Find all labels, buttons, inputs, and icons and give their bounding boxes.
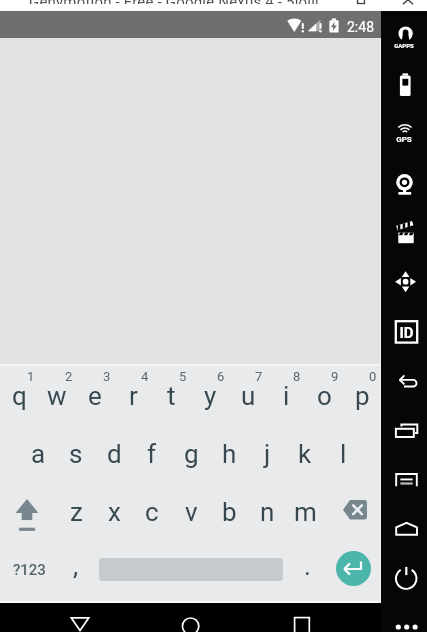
button[interactable]: f [133, 425, 171, 483]
button[interactable] [383, 615, 426, 632]
staticText: u [241, 381, 256, 411]
staticText: y [204, 381, 217, 411]
button[interactable]: ?123 [7, 541, 51, 598]
staticText: l [340, 439, 347, 469]
button[interactable]: q [0, 367, 38, 425]
button[interactable] [383, 262, 426, 296]
staticText: d [107, 439, 122, 469]
button[interactable]: t [152, 367, 190, 425]
staticText: n [260, 497, 275, 527]
button[interactable]: z [57, 483, 95, 541]
staticText: 7 [255, 369, 263, 384]
staticText: s [69, 439, 83, 469]
button[interactable] [383, 314, 426, 348]
button[interactable] [383, 418, 426, 452]
button[interactable]: v [172, 483, 210, 541]
button[interactable] [383, 118, 426, 152]
staticText: t [167, 381, 176, 411]
button[interactable]: g [172, 425, 210, 483]
button[interactable] [176, 609, 206, 632]
button[interactable] [338, 494, 381, 532]
staticText: GPS [396, 135, 412, 143]
staticText: 2 [65, 369, 73, 384]
button[interactable] [383, 23, 426, 57]
staticText: 2:48 [347, 19, 374, 35]
staticText: 3 [103, 369, 111, 384]
button[interactable]: , [62, 537, 90, 595]
staticText: 1 [27, 369, 35, 384]
button[interactable] [336, 551, 371, 586]
staticText: ?123 [13, 561, 46, 579]
button[interactable]: o [305, 367, 343, 425]
staticText: h [222, 439, 237, 469]
staticText: q [12, 381, 27, 411]
staticText: 8 [293, 369, 301, 384]
button[interactable]: a [19, 425, 57, 483]
button[interactable]: e [76, 367, 114, 425]
staticText: Genymotion - Free - Google Nexus 4 - 5lo… [29, 0, 319, 4]
staticText: b [222, 497, 237, 527]
button[interactable]: d [95, 425, 133, 483]
staticText: e [88, 381, 102, 411]
button[interactable] [64, 609, 96, 632]
staticText: w [47, 381, 67, 411]
staticText: c [145, 497, 159, 527]
button[interactable] [383, 215, 426, 249]
staticText: j [264, 439, 271, 469]
staticText: o [317, 381, 332, 411]
button[interactable] [383, 364, 426, 398]
staticText: 0 [369, 369, 377, 384]
staticText: x [108, 497, 121, 527]
staticText: m [294, 497, 317, 527]
button[interactable]: . [293, 537, 321, 595]
staticText: ID [399, 324, 414, 340]
button[interactable]: h [210, 425, 248, 483]
button[interactable]: Genymotion - Free - Google Nexus 4 - 5lo… [0, 0, 427, 11]
button[interactable]: k [286, 425, 324, 483]
staticText: 9 [331, 369, 339, 384]
staticText: , [73, 551, 79, 581]
staticText: z [70, 497, 83, 527]
button[interactable] [383, 65, 426, 99]
staticText: GAPPS [394, 42, 414, 49]
button[interactable]: c [133, 483, 171, 541]
staticText: i [283, 381, 290, 411]
staticText: v [185, 497, 198, 527]
button[interactable]: n [248, 483, 286, 541]
button[interactable] [383, 466, 426, 500]
staticText: . [304, 551, 311, 581]
button[interactable]: r [114, 367, 152, 425]
staticText: k [298, 439, 312, 469]
staticText: g [184, 439, 199, 469]
button[interactable]: b [210, 483, 248, 541]
button[interactable] [8, 492, 46, 532]
staticText: 5 [179, 369, 187, 384]
button[interactable]: m [286, 483, 324, 541]
staticText: a [31, 439, 46, 469]
button[interactable]: l [324, 425, 362, 483]
staticText: 6 [217, 369, 225, 384]
staticText: 4 [141, 369, 149, 384]
button[interactable] [383, 512, 426, 546]
button[interactable] [383, 168, 426, 202]
button[interactable]: u [229, 367, 267, 425]
button[interactable] [383, 560, 426, 594]
button[interactable]: w [38, 367, 76, 425]
button[interactable]: x [95, 483, 133, 541]
button[interactable]: p [343, 367, 381, 425]
staticText: f [147, 439, 157, 469]
button[interactable]: y [191, 367, 229, 425]
staticText: r [129, 381, 138, 411]
staticText: p [355, 381, 370, 411]
button[interactable]: i [267, 367, 305, 425]
button[interactable]: s [57, 425, 95, 483]
button[interactable] [288, 609, 318, 632]
button[interactable]: j [248, 425, 286, 483]
